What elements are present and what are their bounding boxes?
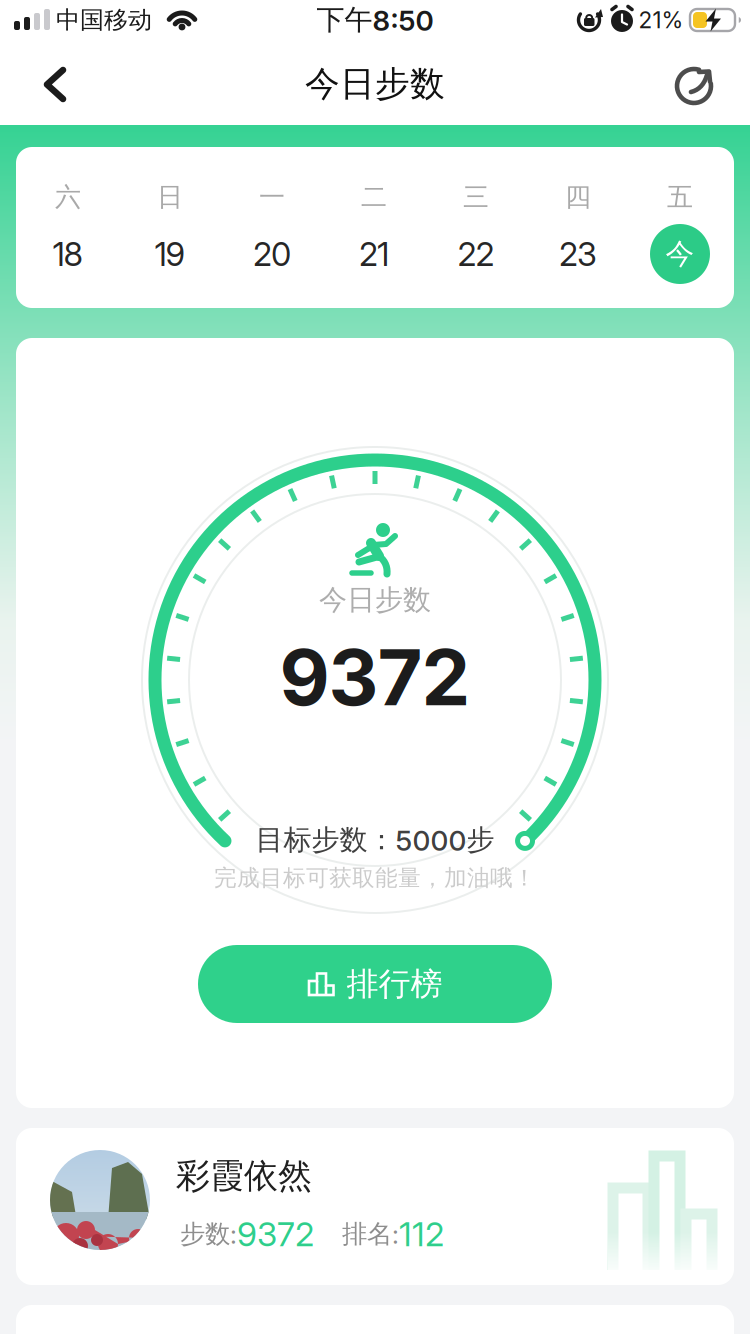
button[interactable]: 今天 [650, 224, 710, 284]
staticText: 9372 [237, 1214, 314, 1254]
staticText: 今日步数 [305, 62, 445, 106]
staticText: 目标步数：5000步 [255, 822, 494, 858]
staticText: 步数: [180, 1218, 237, 1250]
staticText: 19 [154, 234, 185, 274]
button[interactable]: 排行榜 [198, 945, 552, 1023]
staticText: 彩霞依然 [176, 1155, 312, 1197]
staticText: 9372 [279, 630, 470, 724]
staticText: 今日步数 [319, 582, 431, 618]
staticText: 112 [399, 1214, 444, 1254]
staticText: 排名: [342, 1218, 399, 1250]
staticText: 今 [665, 236, 694, 272]
staticText: 日 [157, 181, 183, 213]
staticText: 22 [457, 234, 494, 274]
staticText: 21% [638, 6, 683, 34]
staticText: 完成目标可获取能量，加油哦！ [214, 864, 536, 892]
staticText: 20 [253, 234, 291, 274]
staticText: 18 [52, 234, 83, 274]
button[interactable]: 彩霞依然 [16, 1128, 734, 1285]
button[interactable]: Refresh [654, 44, 734, 125]
staticText: 23 [559, 234, 597, 274]
staticText: 中国移动 [56, 5, 152, 35]
staticText: 下午8:50 [316, 2, 433, 38]
button[interactable]: Back [0, 44, 90, 125]
staticText: 一 [259, 181, 285, 213]
staticText: 21 [359, 234, 389, 274]
staticText: 二 [361, 181, 387, 213]
staticText: 四 [565, 181, 591, 213]
staticText: 六 [55, 181, 81, 213]
staticText: 排行榜 [346, 964, 442, 1004]
staticText: 五 [667, 181, 693, 213]
staticText: 三 [463, 181, 489, 213]
